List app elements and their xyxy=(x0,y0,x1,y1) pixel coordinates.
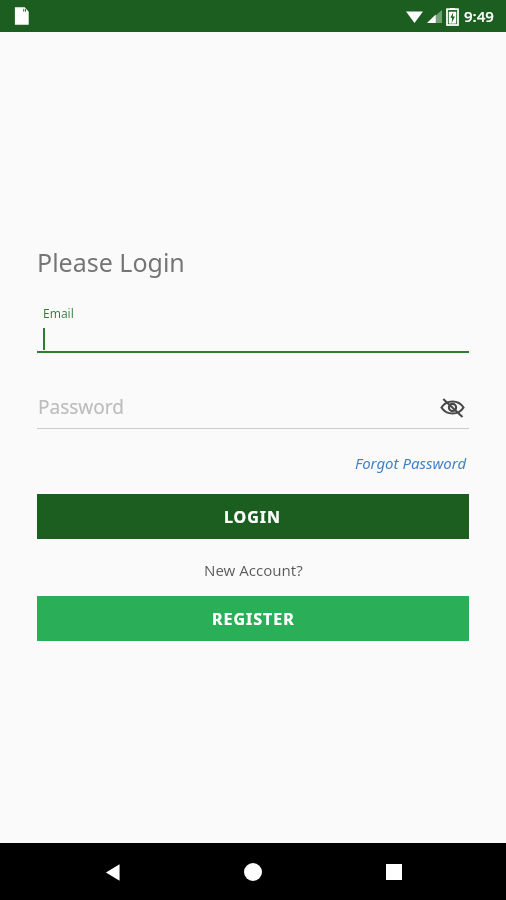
button[interactable]: LOGIN xyxy=(37,494,469,539)
button[interactable]: Back xyxy=(85,844,141,900)
button[interactable]: Show password xyxy=(435,391,469,423)
staticText: Please Login xyxy=(37,245,185,279)
button[interactable]: REGISTER xyxy=(37,596,469,641)
staticText: Password xyxy=(38,394,124,420)
button[interactable]: Home xyxy=(225,844,281,900)
staticText: LOGIN xyxy=(224,506,282,528)
staticText: 9:49 xyxy=(464,6,494,26)
button[interactable]: Password xyxy=(37,391,469,423)
button[interactable]: New Account? xyxy=(200,556,307,584)
button[interactable]: Email xyxy=(37,305,469,353)
staticText: REGISTER xyxy=(212,608,295,630)
button[interactable]: Recent apps xyxy=(366,844,422,900)
button[interactable]: Forgot Password xyxy=(353,450,469,476)
staticText: New Account? xyxy=(204,560,303,580)
staticText: Email xyxy=(43,305,74,321)
staticText: Forgot Password xyxy=(355,453,467,473)
